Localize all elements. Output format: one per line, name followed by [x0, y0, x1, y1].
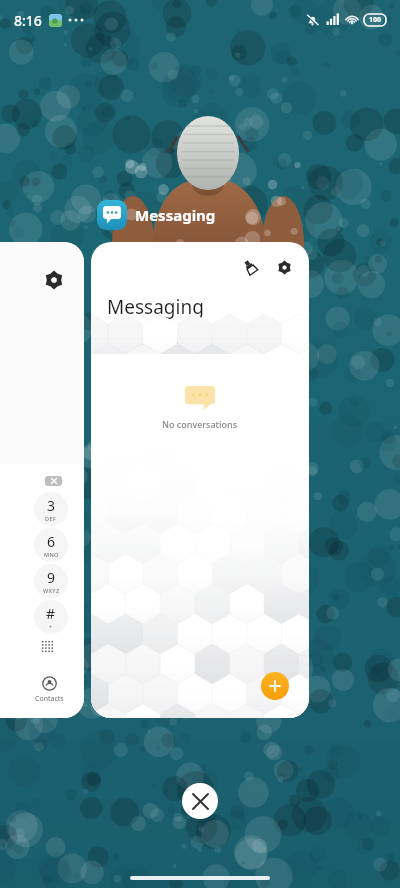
staticText: 9: [47, 568, 56, 587]
staticText: MNO: [44, 551, 59, 558]
staticText: Messaging: [107, 294, 204, 320]
button[interactable]: 6: [34, 528, 68, 562]
button[interactable]: Settings: [44, 270, 64, 290]
button[interactable]: Messaging: [97, 200, 216, 230]
button[interactable]: 3: [34, 492, 68, 526]
button[interactable]: Clean up: [239, 256, 261, 278]
staticText: DEF: [45, 515, 57, 522]
button[interactable]: Clear all: [182, 783, 218, 819]
button[interactable]: Contacts: [35, 676, 64, 704]
button[interactable]: Backspace: [45, 476, 62, 486]
staticText: Search messages: [131, 336, 210, 349]
button[interactable]: Settings: [0, 242, 84, 718]
button[interactable]: Search messages: [105, 330, 295, 354]
staticText: Messaging: [135, 205, 216, 225]
staticText: 100: [369, 15, 382, 25]
button[interactable]: Keypad: [41, 640, 57, 656]
staticText: No conversations: [162, 418, 238, 430]
staticText: +: [49, 623, 53, 630]
button[interactable]: Settings: [273, 256, 295, 278]
staticText: #: [46, 604, 56, 623]
button[interactable]: 9: [34, 564, 68, 598]
button[interactable]: #: [34, 600, 68, 634]
staticText: 6: [47, 532, 56, 551]
staticText: Contacts: [35, 694, 64, 704]
button[interactable]: Clean up: [91, 242, 309, 718]
staticText: WXYZ: [43, 587, 60, 594]
staticText: 3: [47, 496, 56, 515]
staticText: 8:16: [14, 11, 42, 30]
button[interactable]: New conversation: [261, 672, 289, 700]
